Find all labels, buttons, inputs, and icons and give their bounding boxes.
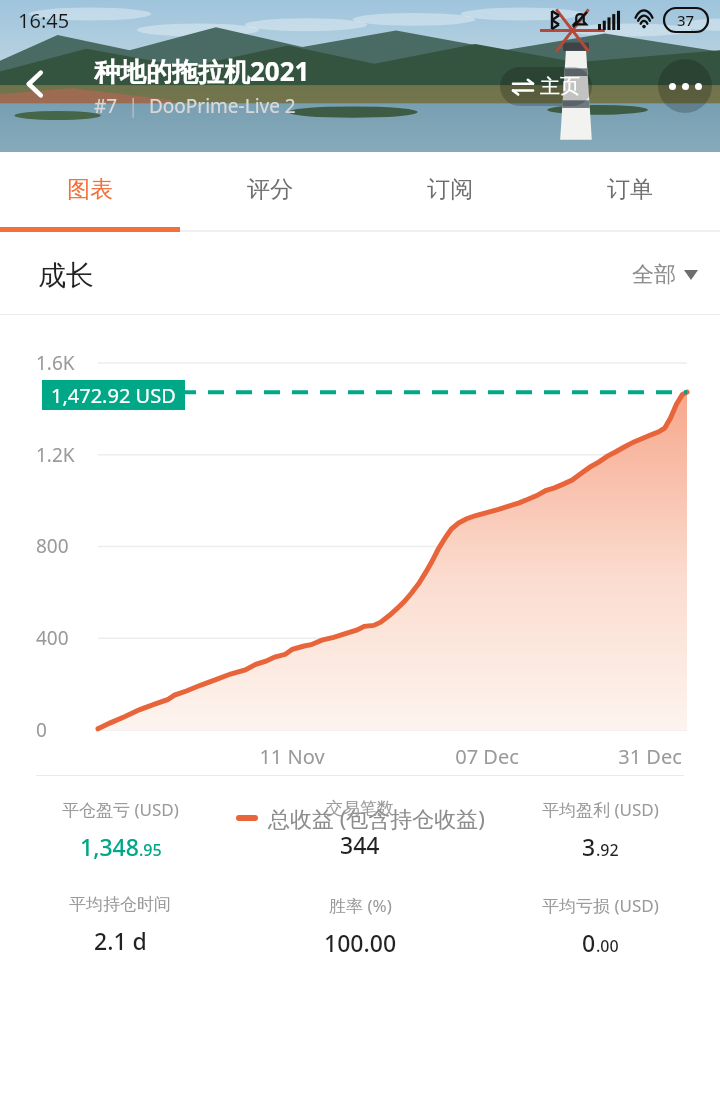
staticText: 0 bbox=[36, 717, 47, 743]
staticText: 交易笔数 bbox=[326, 798, 394, 819]
button[interactable]: 全部 bbox=[632, 261, 698, 289]
staticText: 2.1 d bbox=[94, 925, 147, 956]
button[interactable]: 图表 bbox=[0, 152, 180, 236]
button[interactable]: Back bbox=[8, 56, 64, 112]
staticText: #7 bbox=[94, 93, 118, 119]
staticText: 种地的拖拉机2021 bbox=[94, 53, 310, 89]
staticText: 800 bbox=[36, 533, 69, 559]
staticText: 评分 bbox=[247, 175, 293, 204]
staticText: 平均亏损 (USD) bbox=[542, 894, 659, 917]
staticText: .95 bbox=[139, 839, 162, 861]
staticText: 31 Dec bbox=[618, 743, 682, 770]
staticText: 07 Dec bbox=[455, 743, 519, 770]
staticText: 100.00 bbox=[324, 927, 397, 958]
button[interactable]: More options bbox=[658, 59, 712, 113]
staticText: 400 bbox=[36, 625, 69, 651]
staticText: 总收益 (包含持仓收益) bbox=[268, 803, 485, 833]
staticText: 平均持仓时间 bbox=[69, 894, 171, 915]
staticText: 37 bbox=[677, 10, 695, 30]
staticText: .00 bbox=[596, 935, 619, 957]
staticText: .92 bbox=[596, 839, 619, 861]
staticText: 16:45 bbox=[18, 7, 70, 34]
staticText: 1.2K bbox=[36, 442, 75, 468]
staticText: 图表 bbox=[67, 175, 113, 204]
button[interactable]: 评分 bbox=[180, 152, 360, 236]
staticText: 0 bbox=[582, 927, 596, 958]
staticText: 全部 bbox=[632, 261, 676, 289]
staticText: 主页 bbox=[540, 74, 580, 99]
staticText: 344 bbox=[340, 829, 380, 860]
staticText: 1,348 bbox=[80, 831, 139, 862]
staticText: 平均盈利 (USD) bbox=[542, 798, 659, 821]
button[interactable]: 主页 bbox=[500, 67, 592, 106]
staticText: | bbox=[118, 93, 149, 119]
staticText: 订单 bbox=[607, 175, 653, 204]
staticText: 胜率 (%) bbox=[329, 894, 392, 917]
staticText: 成长 bbox=[38, 258, 94, 293]
staticText: 1,472.92 USD bbox=[51, 382, 176, 409]
staticText: 3 bbox=[582, 831, 596, 862]
staticText: 1.6K bbox=[36, 350, 75, 376]
staticText: 订阅 bbox=[427, 175, 473, 204]
staticText: 11 Nov bbox=[259, 743, 325, 770]
staticText: DooPrime-Live 2 bbox=[149, 93, 296, 119]
staticText: 平仓盈亏 (USD) bbox=[62, 798, 179, 821]
button[interactable]: 订单 bbox=[540, 152, 720, 236]
button[interactable]: 订阅 bbox=[360, 152, 540, 236]
